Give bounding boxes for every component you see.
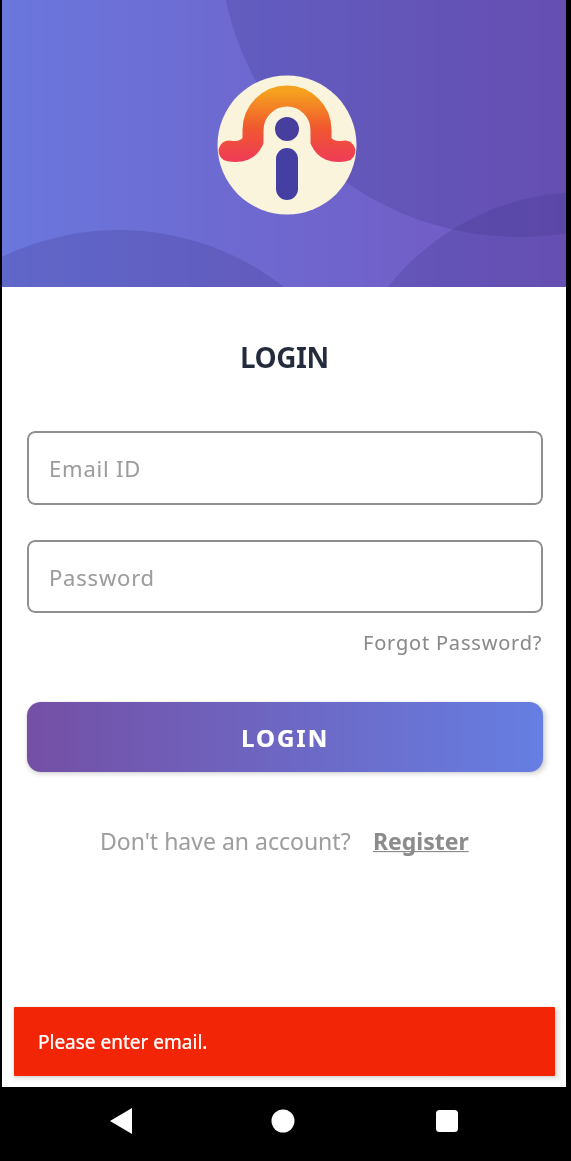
- button[interactable]: [260, 1097, 308, 1145]
- staticText: Password: [49, 562, 155, 592]
- staticText: Don't have an account?: [100, 825, 351, 856]
- button[interactable]: [97, 1097, 145, 1145]
- button[interactable]: Forgot Password?: [363, 629, 543, 656]
- staticText: LOGIN: [240, 338, 329, 376]
- button[interactable]: LOGIN: [27, 702, 543, 772]
- button[interactable]: Email ID: [27, 431, 543, 505]
- staticText: Please enter email.: [38, 1029, 208, 1055]
- button[interactable]: [422, 1097, 470, 1145]
- staticText: Email ID: [49, 453, 142, 483]
- button[interactable]: Register: [373, 825, 469, 856]
- staticText: LOGIN: [241, 721, 330, 754]
- button[interactable]: Password: [27, 540, 543, 613]
- button[interactable]: Please enter email.: [14, 1007, 555, 1076]
